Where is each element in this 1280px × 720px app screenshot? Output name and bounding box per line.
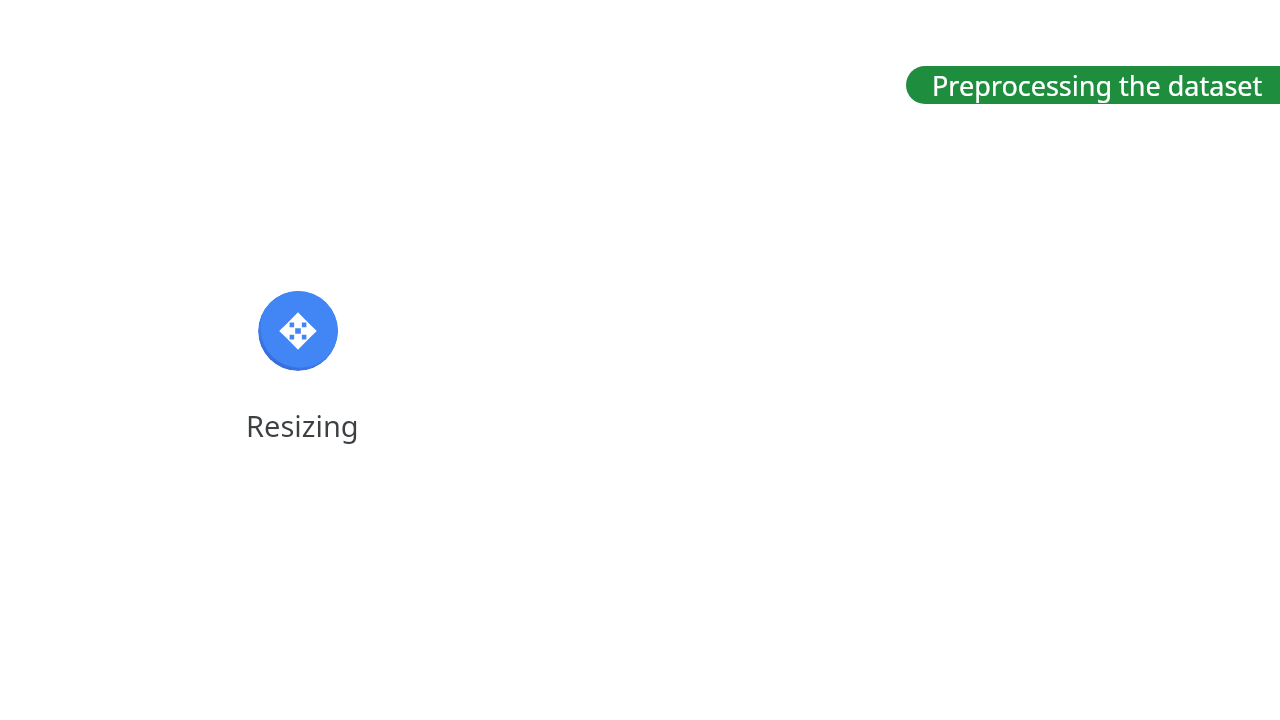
button[interactable]: Preprocessing the dataset — [906, 66, 1280, 104]
button[interactable]: Resizing — [258, 291, 338, 371]
staticText: Resizing — [246, 406, 359, 445]
staticText: Preprocessing the dataset — [932, 67, 1263, 104]
